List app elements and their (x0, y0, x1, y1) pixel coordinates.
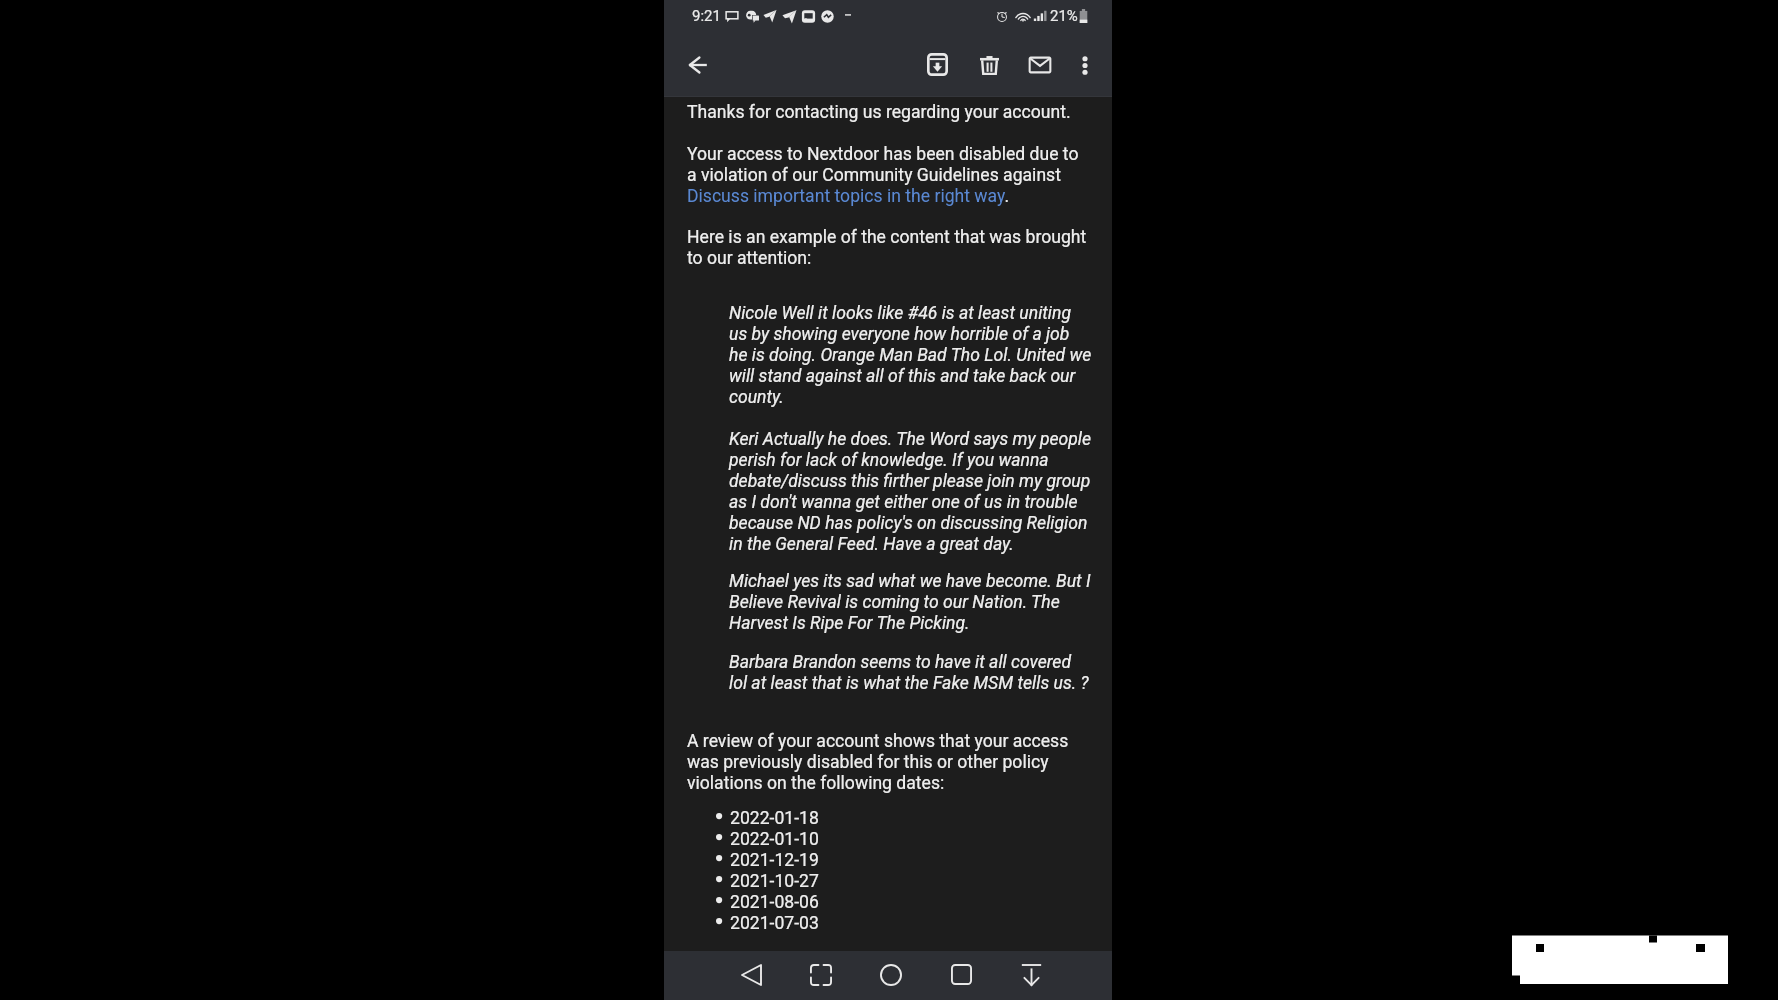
staticText: 2021-10-27 (730, 871, 819, 892)
button[interactable]: Archive (915, 43, 959, 87)
button[interactable]: Full screen (799, 951, 843, 1000)
button[interactable]: Discuss important topics in the right wa… (687, 184, 1005, 205)
button[interactable]: Delete (967, 43, 1011, 87)
staticText: 2022-01-10 (730, 829, 819, 850)
staticText: 2021-07-03 (730, 913, 819, 934)
staticText: A review of your account shows that your… (687, 731, 1090, 794)
staticText: 9:21 (692, 7, 721, 25)
staticText: Here is an example of the content that w… (687, 227, 1090, 269)
staticText: Your access to Nextdoor has been disable… (687, 144, 1090, 207)
button[interactable]: Back (729, 951, 773, 1000)
staticText: 2021-12-19 (730, 850, 819, 871)
staticText: 2021-08-06 (730, 892, 819, 913)
button[interactable]: Navigate up (676, 43, 720, 87)
button[interactable]: Mark as unread (1018, 43, 1062, 87)
staticText: 21% (1050, 7, 1078, 25)
button[interactable]: Home (869, 951, 913, 1000)
button[interactable]: Recent apps (939, 951, 983, 1000)
staticText: Barbara Brandon seems to have it all cov… (729, 652, 1092, 694)
staticText: Nicole Well it looks like #46 is at leas… (729, 303, 1092, 408)
button[interactable]: More options (1063, 43, 1107, 87)
staticText: Michael yes its sad what we have become.… (729, 571, 1092, 634)
staticText: Keri Actually he does. The Word says my … (729, 429, 1092, 555)
staticText: Thanks for contacting us regarding your … (687, 102, 1090, 123)
staticText: 2022-01-18 (730, 808, 819, 829)
button[interactable]: Hide keyboard (1009, 951, 1053, 1000)
